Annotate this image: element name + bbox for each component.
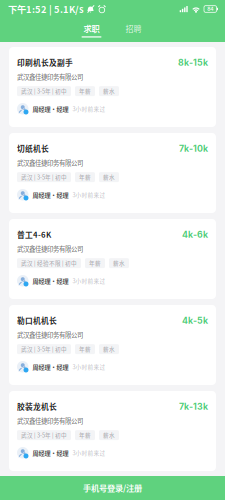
staticText: 武汉 | 3-5年 | 初中 bbox=[21, 173, 67, 181]
staticText: 普工4-6K bbox=[17, 229, 51, 240]
staticText: 薪水 bbox=[103, 345, 115, 353]
staticText: 年薪 bbox=[79, 87, 91, 95]
staticText: 年薪 bbox=[79, 431, 91, 439]
button[interactable]: 勒口机机长 bbox=[9, 305, 216, 385]
staticText bbox=[110, 477, 114, 493]
staticText: 4k-6k bbox=[182, 229, 208, 240]
button[interactable]: 切纸机长 bbox=[9, 133, 216, 213]
staticText: 7k-13k bbox=[179, 401, 208, 412]
staticText: 周经理·经理 bbox=[32, 362, 68, 371]
staticText: 武汉 | 3-5年 | 初中 bbox=[21, 431, 67, 439]
staticText: 3小时前来过 bbox=[72, 449, 105, 457]
staticText: 3小时前来过 bbox=[72, 277, 105, 285]
button[interactable]: 普工4-6K bbox=[9, 219, 216, 299]
staticText: 勒口机机长 bbox=[17, 315, 57, 326]
staticText: 8k-15k bbox=[178, 57, 208, 68]
staticText: 武汉鑫佳捷印务有限公司 bbox=[17, 330, 83, 339]
staticText: 武汉 | 3-5年 | 初中 bbox=[21, 345, 67, 353]
staticText: 周经理·经理 bbox=[32, 190, 68, 199]
button[interactable]: 求职 bbox=[71, 18, 111, 42]
staticText: 4k-5k bbox=[182, 315, 208, 326]
staticText: 求职 bbox=[83, 22, 99, 34]
staticText: 武汉 | 3-5年 | 初中 bbox=[21, 87, 67, 95]
staticText: 年薪 bbox=[79, 173, 91, 181]
staticText: 武汉鑫佳捷印务有限公司 bbox=[17, 416, 83, 425]
button[interactable]: 胶装龙机长 bbox=[9, 391, 216, 471]
staticText: 招聘 bbox=[125, 23, 141, 34]
staticText: 下午1:52 | 5.1K/s bbox=[8, 2, 84, 16]
button[interactable]: 印刷机长及副手 bbox=[9, 47, 216, 127]
staticText: 手机号登录/注册 bbox=[83, 482, 142, 494]
staticText: 武汉鑫佳捷印务有限公司 bbox=[17, 72, 83, 81]
staticText: 薪水 bbox=[103, 173, 115, 181]
staticText: 周经理·经理 bbox=[32, 448, 68, 457]
staticText: 3小时前来过 bbox=[72, 191, 105, 199]
staticText: 3小时前来过 bbox=[72, 363, 105, 371]
button[interactable]: 招聘 bbox=[113, 18, 153, 42]
staticText: 年薪 bbox=[79, 345, 91, 353]
staticText: 武汉鑫佳捷印务有限公司 bbox=[17, 158, 83, 167]
staticText: 薪水 bbox=[113, 259, 125, 267]
staticText: 周经理·经理 bbox=[32, 276, 68, 285]
staticText: 武汉鑫佳捷印务有限公司 bbox=[17, 244, 83, 253]
button[interactable]: 手机号登录/注册 bbox=[0, 476, 225, 500]
staticText: 84 bbox=[207, 6, 213, 12]
staticText: 武汉 | 经验不限 | 初中 bbox=[21, 259, 77, 267]
staticText: 7k-10k bbox=[179, 143, 208, 154]
staticText: 印刷机长及副手 bbox=[17, 57, 73, 68]
staticText: 薪水 bbox=[103, 87, 115, 95]
staticText: 薪水 bbox=[103, 431, 115, 439]
staticText: 胶装龙机长 bbox=[17, 401, 57, 412]
staticText: 3小时前来过 bbox=[72, 105, 105, 113]
staticText: 切纸机长 bbox=[17, 143, 49, 154]
staticText: 年薪 bbox=[89, 259, 101, 267]
staticText: 周经理·经理 bbox=[32, 104, 68, 113]
